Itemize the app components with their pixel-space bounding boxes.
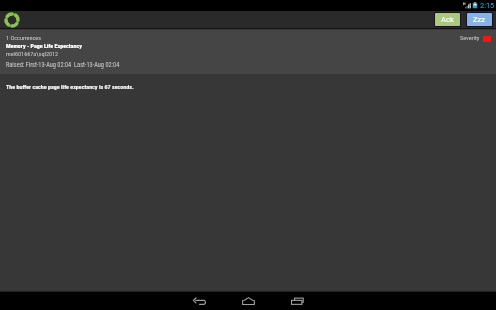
button[interactable]: Recent apps [291,293,304,309]
button[interactable]: Zzz [467,13,492,26]
button[interactable]: Back [193,293,206,309]
button[interactable]: Home [242,293,255,309]
staticText: Severity [460,34,480,41]
button[interactable]: Home, navigate up [4,12,20,28]
staticText: Raised: First-13-Aug 02:04 Last-13-Aug 0… [6,61,120,68]
staticText: 2:15 [480,1,495,10]
staticText: Zzz [473,15,486,24]
staticText: 1 Occurrences [6,34,42,41]
staticText: Ack [441,15,454,24]
staticText: Memory - Page Life Expectancy [6,42,82,49]
staticText: The buffer cache page life expectancy is… [6,83,134,90]
button[interactable]: Ack [435,13,460,26]
staticText: mel601667a\sql2012 [6,50,59,57]
